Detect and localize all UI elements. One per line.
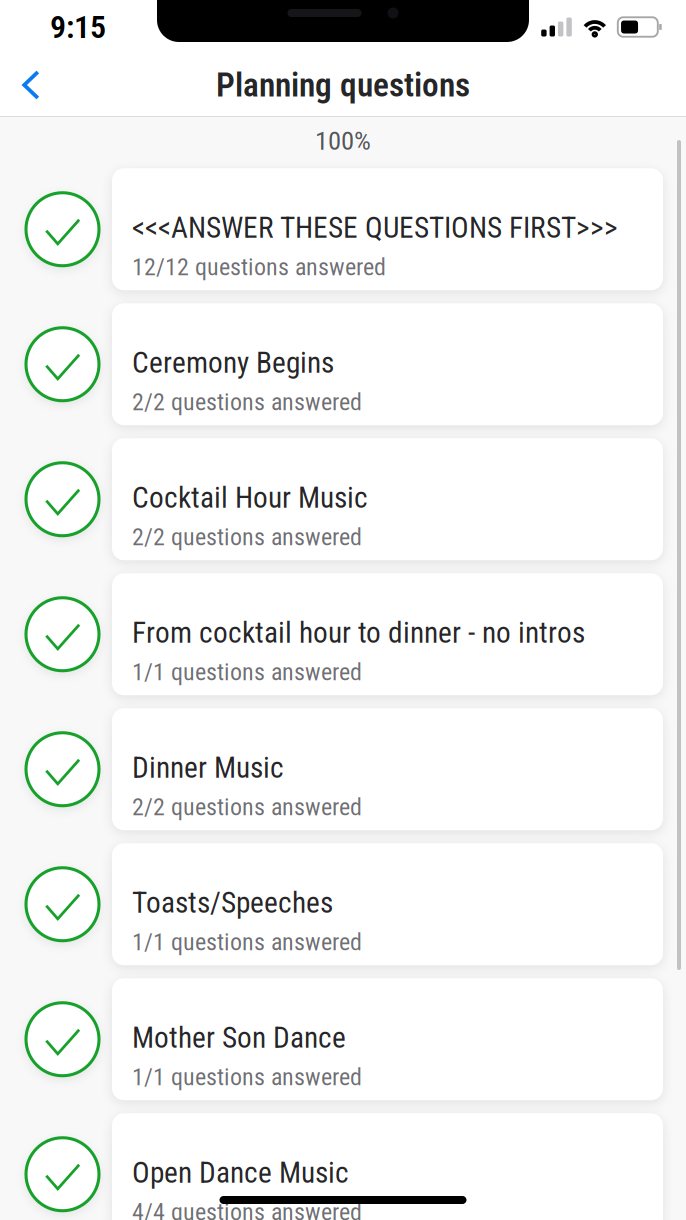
staticText: Toasts/Speeches	[132, 885, 333, 920]
button[interactable]: <<<ANSWER THESE QUESTIONS FIRST>>>	[0, 168, 686, 290]
button[interactable]: Cocktail Hour Music	[0, 438, 686, 560]
staticText: Cocktail Hour Music	[132, 480, 368, 515]
staticText: 2/2 questions answered	[132, 793, 362, 821]
staticText: Planning questions	[216, 65, 470, 105]
button[interactable]: Back	[8, 58, 54, 112]
staticText: Dinner Music	[132, 750, 284, 785]
staticText: Ceremony Begins	[132, 345, 334, 380]
staticText: 100%	[315, 125, 371, 156]
button[interactable]: Dinner Music	[0, 708, 686, 830]
staticText: 2/2 questions answered	[132, 388, 362, 416]
staticText: 1/1 questions answered	[132, 658, 362, 686]
button[interactable]: Open Dance Music	[0, 1113, 686, 1220]
button[interactable]: From cocktail hour to dinner - no intros	[0, 573, 686, 695]
staticText: 1/1 questions answered	[132, 1063, 362, 1091]
staticText: Mother Son Dance	[132, 1020, 346, 1055]
button[interactable]: Ceremony Begins	[0, 303, 686, 425]
staticText: 4/4 questions answered	[132, 1198, 362, 1220]
staticText: 2/2 questions answered	[132, 523, 362, 551]
staticText: <<<ANSWER THESE QUESTIONS FIRST>>>	[132, 210, 618, 245]
staticText: From cocktail hour to dinner - no intros	[132, 615, 585, 650]
button[interactable]: Mother Son Dance	[0, 978, 686, 1100]
button[interactable]: Toasts/Speeches	[0, 843, 686, 965]
staticText: 1/1 questions answered	[132, 928, 362, 956]
staticText: 12/12 questions answered	[132, 253, 386, 281]
staticText: Open Dance Music	[132, 1155, 349, 1190]
staticText: 9:15	[50, 8, 106, 46]
